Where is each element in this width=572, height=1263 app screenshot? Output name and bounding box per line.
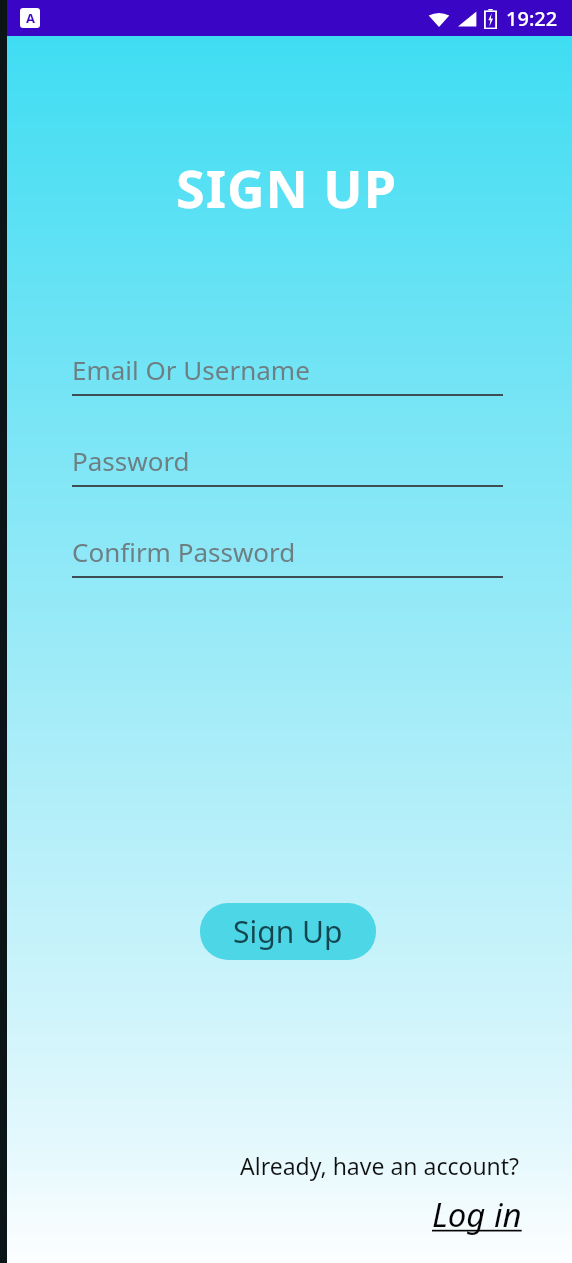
button[interactable]: Confirm Password: [72, 534, 503, 578]
staticText: A: [26, 9, 35, 27]
other: Battery charging: [484, 9, 497, 29]
staticText: 19:22: [506, 5, 558, 32]
staticText: Email Or Username: [72, 352, 310, 387]
button[interactable]: Password: [72, 443, 503, 487]
staticText: Confirm Password: [72, 534, 296, 569]
staticText: Sign Up: [233, 911, 343, 952]
staticText: Log in: [432, 1192, 522, 1237]
button[interactable]: Log in: [432, 1192, 522, 1237]
staticText: SIGN UP: [176, 152, 397, 223]
other: Wi-Fi: [428, 10, 450, 28]
button[interactable]: Sign Up: [200, 903, 376, 960]
button[interactable]: Email Or Username: [72, 352, 503, 396]
other: Cellular signal: [457, 10, 477, 28]
staticText: Password: [72, 443, 190, 478]
staticText: Already, have an account?: [240, 1150, 520, 1181]
